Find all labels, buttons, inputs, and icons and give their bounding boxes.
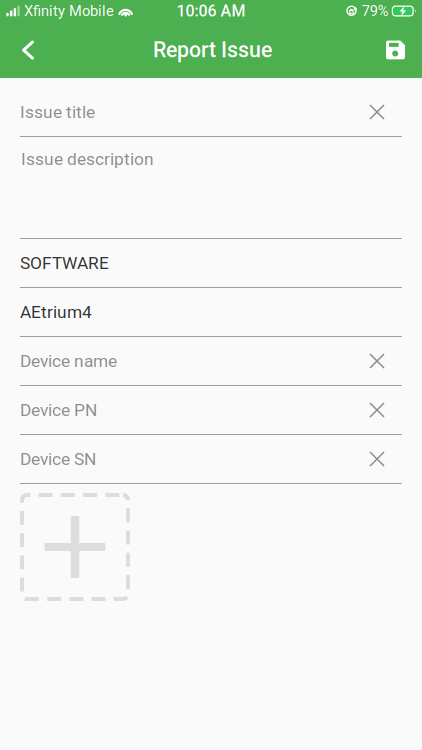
button[interactable]: Issue description — [0, 137, 422, 239]
staticText: 10:06 AM — [176, 2, 245, 20]
button[interactable]: Back — [0, 22, 56, 78]
button[interactable]: SOFTWARE — [0, 239, 422, 288]
staticText: Issue title — [20, 102, 95, 122]
button[interactable]: Device PN — [0, 386, 422, 435]
button[interactable]: Device SN — [0, 435, 422, 484]
button[interactable]: AEtrium4 — [0, 288, 422, 337]
staticText: 79% — [358, 2, 389, 20]
staticText: Device SN — [20, 449, 96, 469]
staticText: Device PN — [20, 400, 97, 420]
button[interactable]: Save — [369, 22, 422, 78]
button[interactable]: Add photo — [20, 493, 130, 601]
staticText: Device name — [20, 351, 117, 371]
staticText: Issue description — [21, 149, 154, 169]
staticText: Report Issue — [153, 37, 272, 62]
button[interactable]: Device name — [0, 337, 422, 386]
staticText: Xfinity Mobile — [20, 2, 118, 20]
staticText: AEtrium4 — [20, 302, 92, 322]
button[interactable]: Issue title — [0, 78, 422, 137]
staticText: SOFTWARE — [20, 253, 109, 273]
